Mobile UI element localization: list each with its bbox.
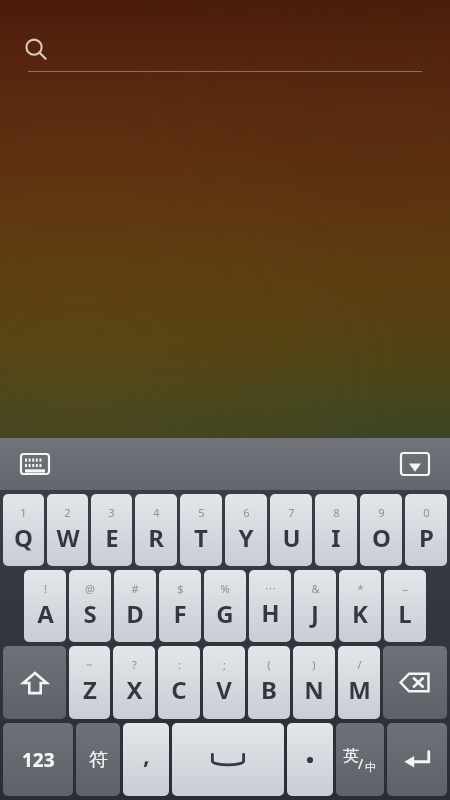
- staticText: F: [173, 597, 187, 630]
- staticText: ?: [132, 657, 137, 672]
- staticText: J: [311, 597, 319, 630]
- button[interactable]: !: [24, 570, 66, 642]
- staticText: #: [131, 581, 139, 596]
- staticText: !: [44, 581, 47, 596]
- staticText: ;: [223, 657, 226, 672]
- button[interactable]: –: [384, 570, 426, 642]
- staticText: K: [352, 597, 368, 630]
- staticText: V: [216, 673, 232, 706]
- staticText: H: [261, 596, 280, 629]
- staticText: 英: [343, 746, 359, 766]
- button[interactable]: @: [69, 570, 111, 642]
- staticText: Z: [83, 673, 97, 706]
- staticText: *: [357, 581, 364, 596]
- staticText: ,: [143, 738, 150, 771]
- button[interactable]: 2: [47, 494, 88, 566]
- staticText: 0: [423, 505, 430, 520]
- staticText: /: [358, 754, 364, 773]
- staticText: 8: [333, 505, 340, 520]
- staticText: O: [372, 521, 391, 554]
- button[interactable]: 6: [225, 494, 267, 566]
- staticText: ): [312, 657, 316, 672]
- staticText: @: [85, 581, 95, 596]
- staticText: 5: [198, 505, 205, 520]
- button[interactable]: Backspace: [383, 646, 447, 719]
- button[interactable]: 符: [76, 723, 120, 796]
- button[interactable]: Switch keyboard: [16, 445, 54, 483]
- button[interactable]: 123: [3, 723, 73, 796]
- staticText: L: [398, 597, 412, 630]
- staticText: %: [220, 581, 230, 596]
- staticText: W: [56, 521, 80, 554]
- staticText: &: [311, 581, 320, 596]
- staticText: I: [331, 521, 341, 554]
- button[interactable]: %: [204, 570, 246, 642]
- button[interactable]: Search: [22, 36, 50, 64]
- button[interactable]: ): [293, 646, 335, 719]
- button[interactable]: ~: [69, 646, 110, 719]
- staticText: (: [267, 657, 271, 672]
- button[interactable]: &: [294, 570, 336, 642]
- button[interactable]: 7: [270, 494, 312, 566]
- staticText: P: [419, 521, 434, 554]
- staticText: 1: [20, 505, 27, 520]
- button[interactable]: Shift: [3, 646, 66, 719]
- staticText: 符: [89, 748, 108, 772]
- staticText: M: [348, 673, 371, 706]
- button[interactable]: *: [339, 570, 381, 642]
- button[interactable]: Period: [287, 723, 333, 796]
- button[interactable]: ⋯: [249, 570, 291, 642]
- staticText: D: [126, 597, 144, 630]
- staticText: $: [177, 581, 184, 596]
- button[interactable]: 8: [315, 494, 357, 566]
- button[interactable]: $: [159, 570, 201, 642]
- button[interactable]: Enter: [387, 723, 447, 796]
- staticText: C: [171, 673, 187, 706]
- button[interactable]: Hide keyboard: [396, 445, 434, 483]
- staticText: 中: [365, 760, 376, 774]
- staticText: ⋯: [265, 582, 276, 595]
- button[interactable]: /: [338, 646, 380, 719]
- button[interactable]: 0: [405, 494, 447, 566]
- button[interactable]: 4: [135, 494, 177, 566]
- staticText: ~: [86, 657, 93, 672]
- staticText: Q: [14, 521, 33, 554]
- button[interactable]: :: [158, 646, 200, 719]
- button[interactable]: #: [114, 570, 156, 642]
- staticText: 9: [378, 505, 385, 520]
- staticText: 2: [64, 505, 71, 520]
- button[interactable]: 5: [180, 494, 222, 566]
- button[interactable]: Comma: [123, 723, 169, 796]
- button[interactable]: 3: [91, 494, 132, 566]
- button[interactable]: ;: [203, 646, 245, 719]
- staticText: S: [83, 597, 97, 630]
- staticText: R: [148, 521, 164, 554]
- staticText: 7: [288, 505, 295, 520]
- staticText: N: [304, 673, 324, 706]
- staticText: 123: [22, 747, 55, 773]
- staticText: T: [194, 521, 208, 554]
- staticText: B: [261, 673, 277, 706]
- staticText: X: [126, 673, 143, 706]
- button[interactable]: Space: [172, 723, 284, 796]
- button[interactable]: ?: [113, 646, 155, 719]
- staticText: –: [402, 581, 408, 596]
- staticText: :: [178, 657, 181, 672]
- staticText: 4: [153, 505, 160, 520]
- button[interactable]: 1: [3, 494, 44, 566]
- staticText: Y: [238, 521, 254, 554]
- staticText: U: [282, 521, 301, 554]
- staticText: /: [357, 657, 362, 672]
- button[interactable]: (: [248, 646, 290, 719]
- staticText: E: [105, 521, 119, 554]
- staticText: 3: [108, 505, 115, 520]
- button[interactable]: 英: [336, 723, 384, 796]
- staticText: A: [37, 597, 54, 630]
- button[interactable]: 9: [360, 494, 402, 566]
- staticText: 6: [243, 505, 250, 520]
- staticText: G: [216, 597, 234, 630]
